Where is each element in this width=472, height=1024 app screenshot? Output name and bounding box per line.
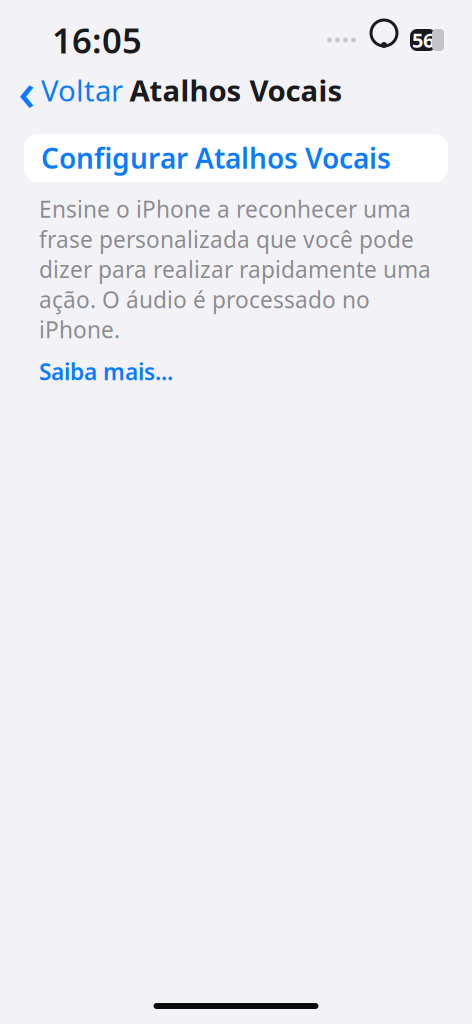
staticText: Configurar Atalhos Vocais [41,139,391,177]
staticText: 16:05 [52,17,142,63]
staticText: Saiba mais... [39,356,173,387]
staticText: Ensine o iPhone a reconhecer uma frase p… [39,194,431,344]
staticText: 56 [412,27,434,53]
button[interactable]: Saiba mais... [39,352,173,391]
staticText: ‹ [18,55,35,125]
staticText: Atalhos Vocais [129,70,342,109]
button[interactable]: Configurar Atalhos Vocais [24,134,448,182]
button[interactable]: ‹ [6,49,135,131]
staticText: Voltar [41,70,123,109]
